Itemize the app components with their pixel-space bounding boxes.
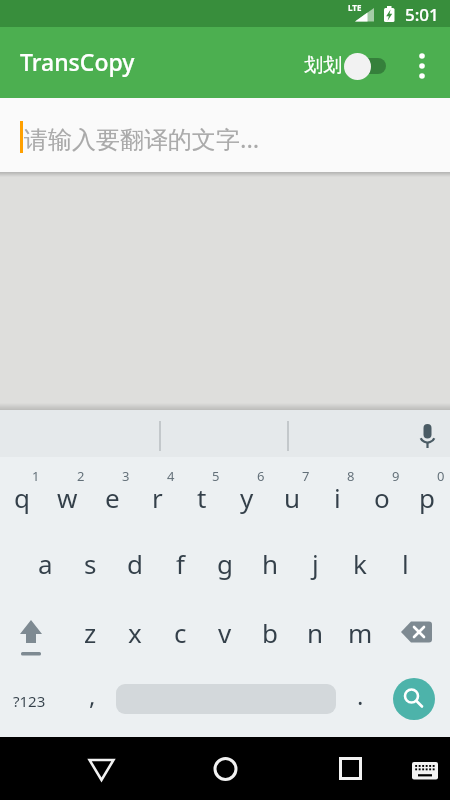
- button[interactable]: p: [405, 469, 449, 525]
- button[interactable]: ,: [70, 667, 114, 723]
- button[interactable]: ?123: [4, 673, 54, 729]
- staticText: o: [374, 480, 390, 515]
- button[interactable]: f: [158, 535, 202, 591]
- button[interactable]: z: [68, 604, 112, 660]
- button[interactable]: 8: [341, 466, 361, 486]
- button[interactable]: d: [113, 535, 157, 591]
- button[interactable]: s: [68, 535, 112, 591]
- button[interactable]: e: [90, 469, 134, 525]
- staticText: 4: [167, 467, 175, 485]
- button[interactable]: b: [248, 604, 292, 660]
- staticText: 3: [122, 467, 130, 485]
- button[interactable]: l: [383, 535, 427, 591]
- staticText: h: [262, 546, 279, 581]
- staticText: t: [197, 480, 207, 515]
- staticText: b: [262, 615, 278, 650]
- staticText: 划划: [304, 54, 342, 78]
- staticText: y: [240, 480, 254, 515]
- button[interactable]: [404, 410, 450, 457]
- button[interactable]: [202, 746, 248, 792]
- staticText: r: [152, 480, 163, 515]
- staticText: 2: [77, 467, 85, 485]
- staticText: u: [284, 480, 301, 515]
- staticText: i: [334, 480, 341, 515]
- staticText: TransCopy: [20, 46, 135, 77]
- button[interactable]: h: [248, 535, 292, 591]
- staticText: .: [357, 679, 364, 712]
- button[interactable]: t: [180, 469, 224, 525]
- staticText: v: [218, 615, 232, 650]
- staticText: 5: [212, 467, 220, 485]
- button[interactable]: j: [293, 535, 337, 591]
- staticText: ,: [89, 679, 96, 712]
- button[interactable]: u: [270, 469, 314, 525]
- button[interactable]: [4, 604, 60, 660]
- button[interactable]: 5: [206, 466, 226, 486]
- button[interactable]: q: [0, 469, 44, 525]
- staticText: 1: [32, 467, 40, 485]
- staticText: 7: [302, 467, 310, 485]
- button[interactable]: m: [338, 604, 382, 660]
- staticText: x: [128, 615, 142, 650]
- button[interactable]: [78, 746, 124, 792]
- staticText: e: [105, 480, 120, 515]
- button[interactable]: 4: [161, 466, 181, 486]
- staticText: s: [84, 546, 97, 581]
- staticText: j: [312, 546, 319, 581]
- button[interactable]: o: [360, 469, 404, 525]
- button[interactable]: [405, 753, 445, 787]
- staticText: 0: [437, 467, 445, 485]
- staticText: c: [174, 615, 187, 650]
- staticText: q: [14, 480, 30, 515]
- button[interactable]: r: [135, 469, 179, 525]
- button[interactable]: 7: [296, 466, 316, 486]
- button[interactable]: v: [203, 604, 247, 660]
- button[interactable]: w: [45, 469, 89, 525]
- staticText: p: [419, 480, 435, 515]
- staticText: 5:01: [405, 3, 439, 26]
- staticText: m: [348, 615, 373, 650]
- button[interactable]: g: [203, 535, 247, 591]
- staticText: 8: [347, 467, 355, 485]
- button[interactable]: 3: [116, 466, 136, 486]
- button[interactable]: [390, 604, 446, 660]
- staticText: 请输入要翻译的文字...: [24, 122, 260, 155]
- staticText: ?123: [13, 691, 46, 711]
- staticText: l: [402, 546, 409, 581]
- staticText: 6: [257, 467, 265, 485]
- staticText: g: [217, 546, 233, 581]
- staticText: LTE: [348, 2, 362, 13]
- button[interactable]: 0: [431, 466, 450, 486]
- staticText: f: [176, 546, 185, 581]
- button[interactable]: [327, 746, 373, 792]
- button[interactable]: 1: [26, 466, 46, 486]
- staticText: a: [38, 546, 53, 581]
- staticText: w: [57, 480, 78, 515]
- button[interactable]: .: [338, 667, 382, 723]
- button[interactable]: y: [225, 469, 269, 525]
- button[interactable]: [344, 52, 386, 80]
- button[interactable]: i: [315, 469, 359, 525]
- button[interactable]: 6: [251, 466, 271, 486]
- button[interactable]: x: [113, 604, 157, 660]
- button[interactable]: n: [293, 604, 337, 660]
- button[interactable]: [393, 678, 435, 720]
- staticText: n: [307, 615, 324, 650]
- button[interactable]: 2: [71, 466, 91, 486]
- staticText: z: [84, 615, 97, 650]
- staticText: 9: [392, 467, 400, 485]
- staticText: k: [353, 546, 367, 581]
- button[interactable]: 请输入要翻译的文字...: [0, 98, 450, 172]
- button[interactable]: c: [158, 604, 202, 660]
- button[interactable]: k: [338, 535, 382, 591]
- button[interactable]: [408, 44, 436, 88]
- button[interactable]: a: [23, 535, 67, 591]
- staticText: d: [127, 546, 143, 581]
- button[interactable]: 9: [386, 466, 406, 486]
